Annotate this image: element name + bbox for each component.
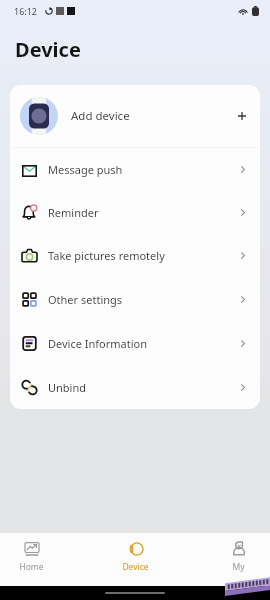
other: Add device: [238, 112, 246, 120]
staticText: Home: [19, 561, 44, 573]
staticText: 16:12: [14, 5, 38, 17]
staticText: Reminder: [48, 205, 99, 220]
button[interactable]: Device: [120, 533, 151, 573]
button[interactable]: Take pictures remotely: [10, 234, 260, 277]
button[interactable]: Home: [16, 533, 47, 573]
staticText: Unbind: [48, 380, 87, 395]
button[interactable]: Device Information: [10, 321, 260, 365]
button[interactable]: Add device: [10, 85, 260, 147]
staticText: Add device: [71, 108, 130, 124]
staticText: Take pictures remotely: [48, 248, 165, 263]
staticText: Device Information: [48, 336, 148, 351]
button[interactable]: My: [223, 533, 254, 573]
button[interactable]: Unbind: [10, 365, 260, 409]
staticText: Device: [15, 36, 81, 63]
button[interactable]: Reminder: [10, 191, 260, 234]
button[interactable]: Other settings: [10, 277, 260, 321]
staticText: Other settings: [48, 292, 123, 307]
staticText: My: [232, 561, 245, 573]
staticText: Message push: [48, 162, 123, 177]
button[interactable]: Message push: [10, 148, 260, 191]
staticText: Device: [122, 561, 149, 573]
